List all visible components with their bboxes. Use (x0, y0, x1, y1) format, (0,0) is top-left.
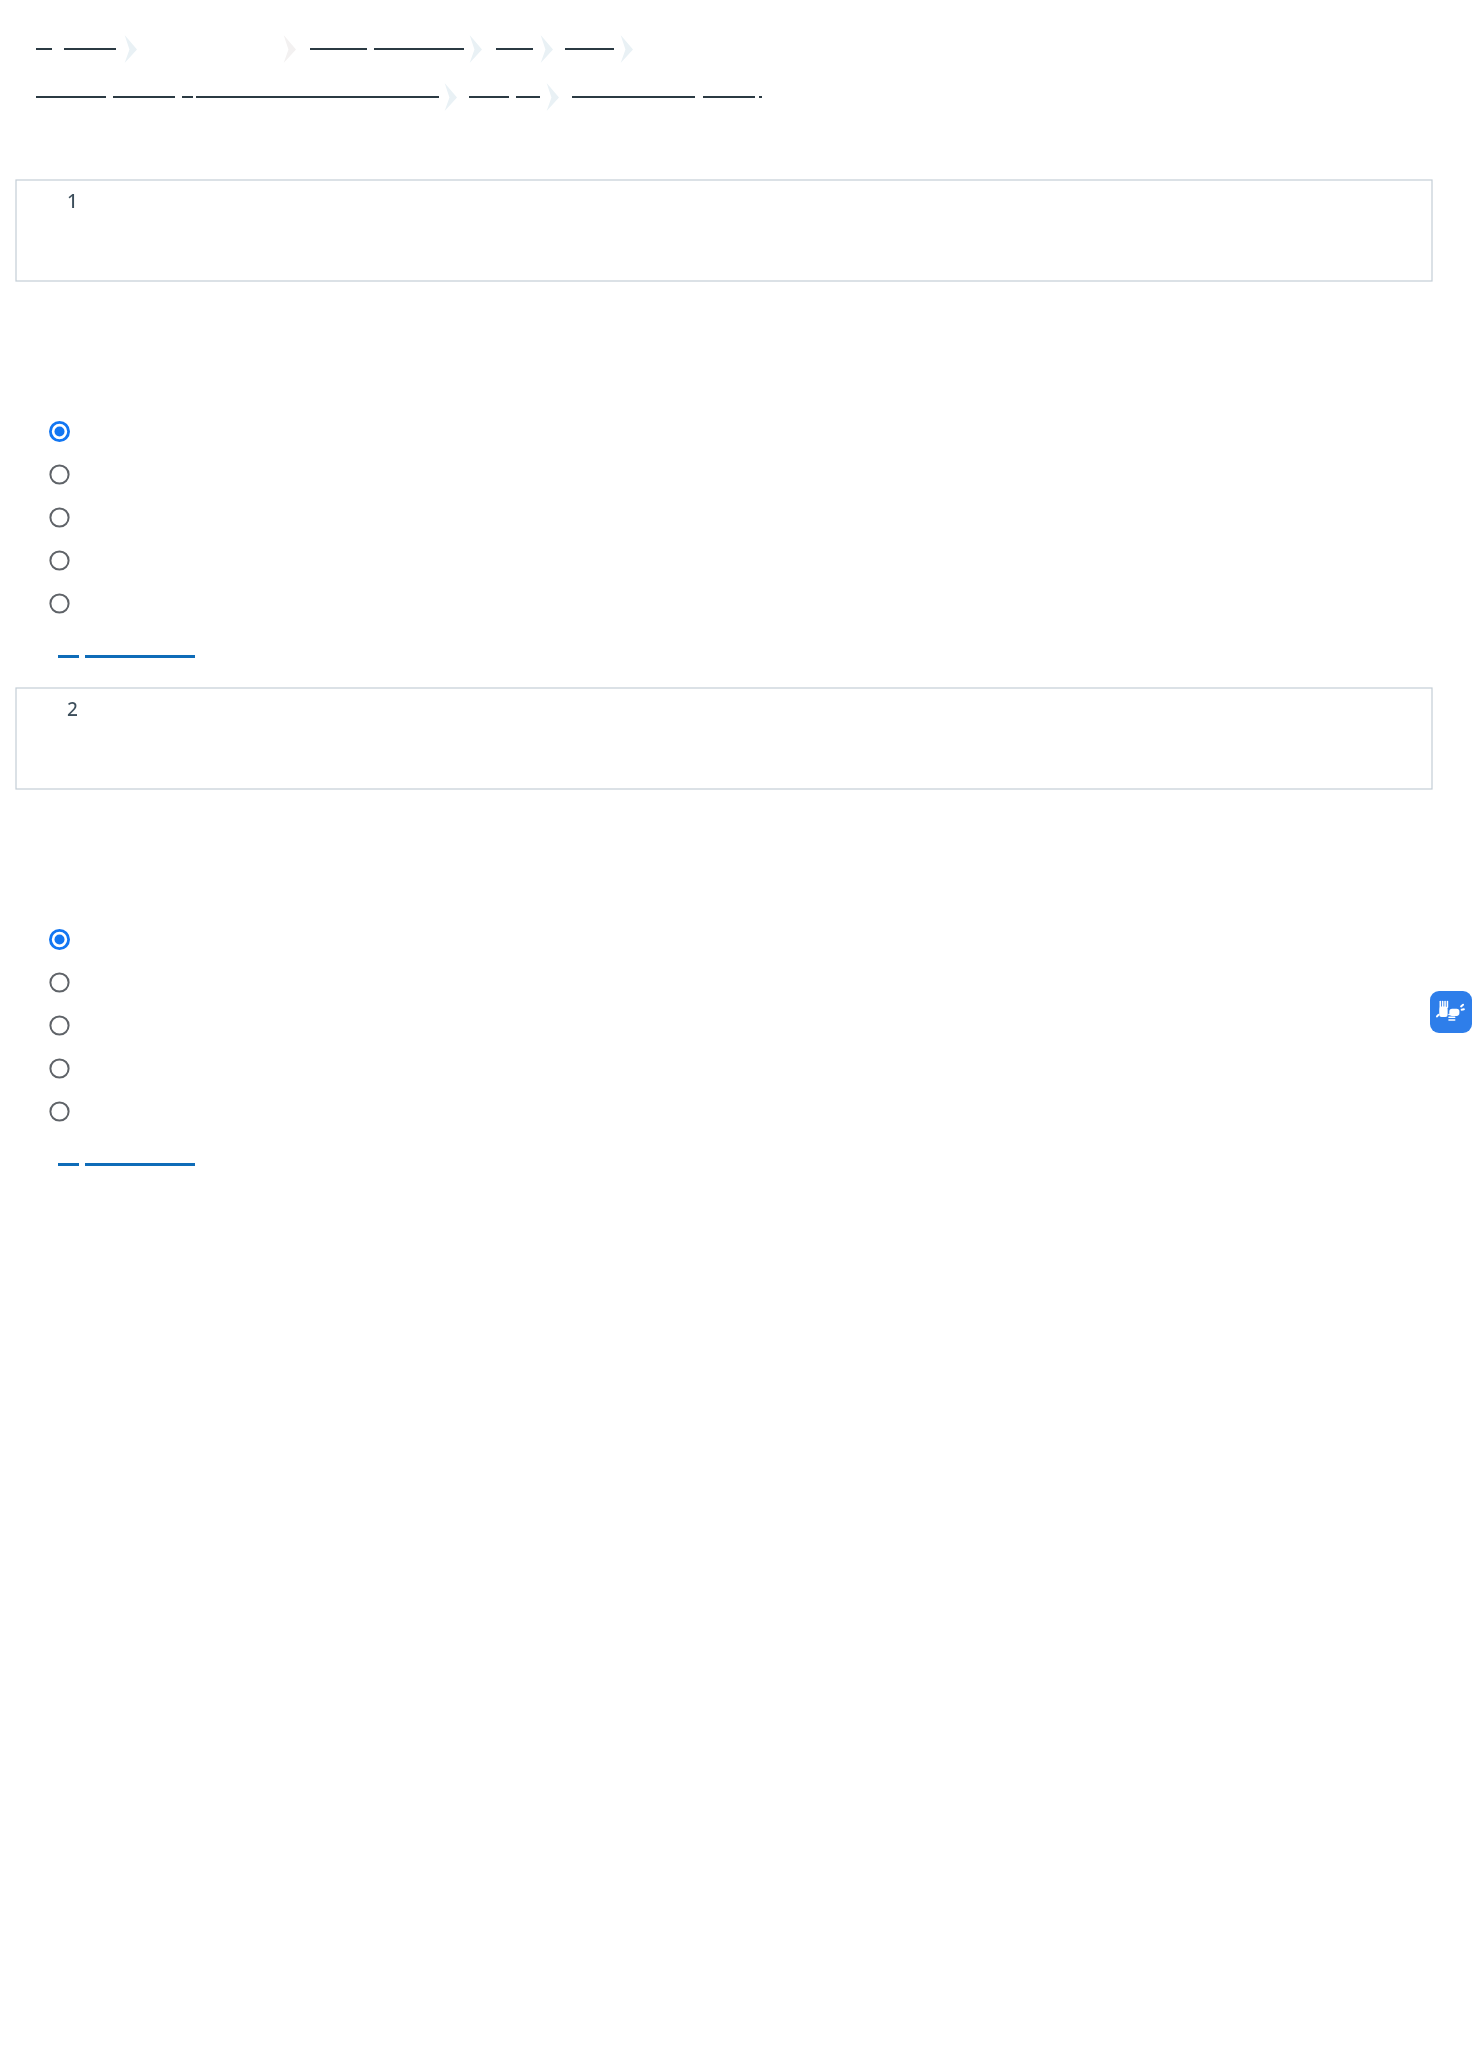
button[interactable]: Sign language accessibility (1430, 991, 1472, 1033)
staticText: 2 (67, 696, 78, 722)
button[interactable] (58, 1163, 195, 1166)
button[interactable] (0, 413, 1475, 449)
button[interactable] (0, 1093, 1475, 1129)
button[interactable] (0, 964, 1475, 1000)
staticText: 1 (67, 188, 78, 214)
button[interactable] (0, 456, 1475, 492)
button[interactable] (0, 1007, 1475, 1043)
button[interactable] (0, 921, 1475, 957)
button[interactable] (0, 499, 1475, 535)
button[interactable]: 2 (16, 688, 1432, 789)
button[interactable] (0, 542, 1475, 578)
button[interactable] (0, 585, 1475, 621)
button[interactable] (0, 1050, 1475, 1086)
button[interactable] (58, 655, 195, 658)
button[interactable]: 1 (16, 180, 1432, 281)
